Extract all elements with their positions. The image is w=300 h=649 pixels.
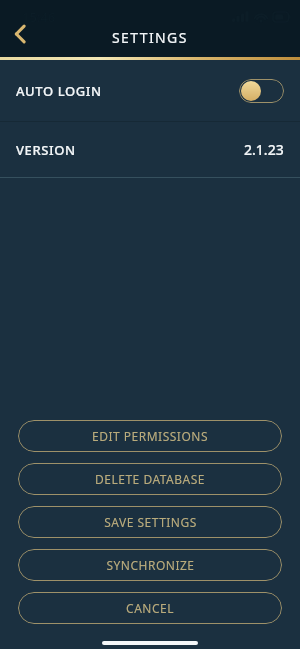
button[interactable]: SYNCHRONIZE [18,549,282,581]
staticText: VERSION [16,141,76,159]
button[interactable]: Auto login toggle [239,79,284,103]
button[interactable]: DELETE DATABASE [18,463,282,495]
staticText: CANCEL [126,600,174,616]
staticText: SETTINGS [112,28,188,47]
button[interactable]: SAVE SETTINGS [18,506,282,538]
button[interactable]: VERSION [0,122,300,177]
button[interactable]: EDIT PERMISSIONS [18,420,282,452]
staticText: EDIT PERMISSIONS [92,428,208,444]
button[interactable]: AUTO LOGIN [0,60,300,121]
staticText: 2.1.23 [244,140,284,159]
staticText: AUTO LOGIN [16,82,102,100]
staticText: 15:46 [22,8,56,26]
staticText: DELETE DATABASE [95,471,205,487]
button[interactable]: Back [4,18,36,50]
staticText: SYNCHRONIZE [106,557,195,573]
button[interactable]: CANCEL [18,592,282,624]
staticText: SAVE SETTINGS [104,514,197,530]
